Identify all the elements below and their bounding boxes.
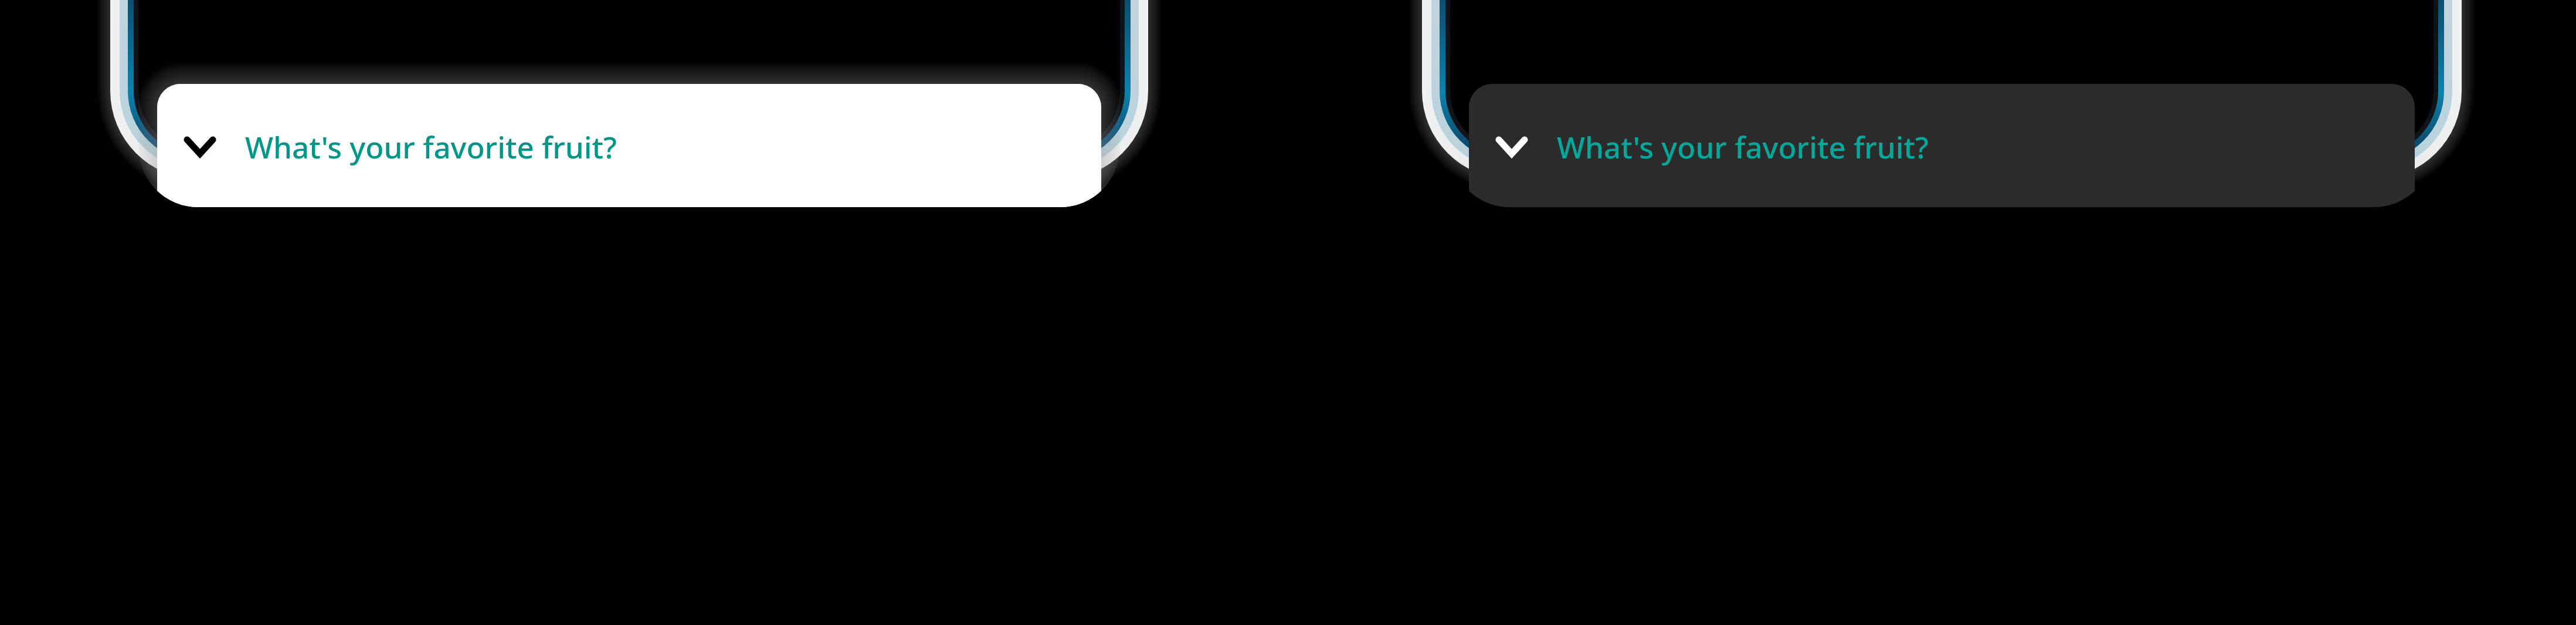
staticText: What's your favorite fruit? [245, 126, 617, 167]
staticText: What's your favorite fruit? [1557, 126, 1929, 167]
button[interactable]: Collapse What's your favorite fruit [157, 84, 1101, 207]
button[interactable]: Collapse What's your favorite fruit [1469, 84, 2415, 207]
